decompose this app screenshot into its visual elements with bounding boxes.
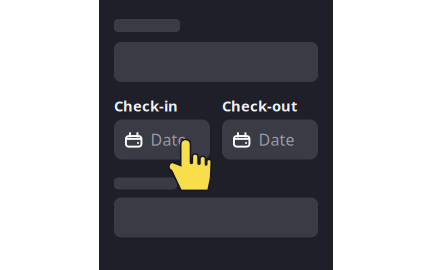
button[interactable]: Date [114,119,210,159]
staticText: Check-out [222,96,297,115]
staticText: Date [150,129,186,150]
staticText: Date [258,129,294,150]
staticText: Check-in [114,96,178,115]
button[interactable]: Date [222,119,318,159]
